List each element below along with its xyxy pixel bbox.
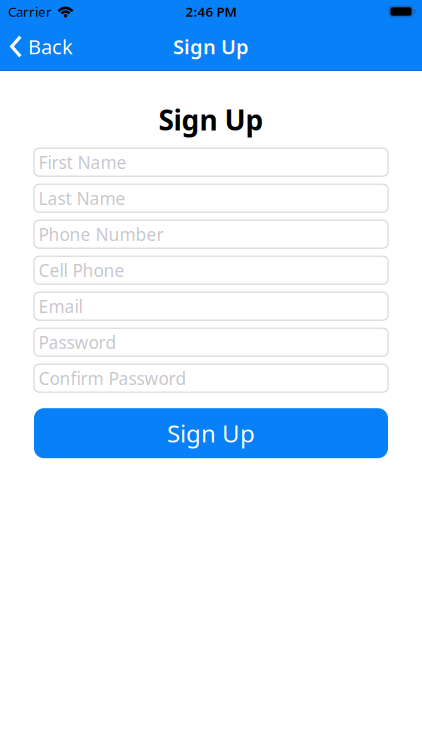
button[interactable]: Last Name [34,184,388,212]
button[interactable]: First Name [34,148,388,176]
button[interactable]: Back [0,33,73,60]
button[interactable]: Phone Number [34,220,388,248]
staticText: Email [38,295,82,318]
staticText: Sign Up [173,33,249,60]
button[interactable]: Password [34,328,388,356]
staticText: Sign Up [167,417,255,449]
staticText: Confirm Password [38,367,186,390]
button[interactable]: Email [34,292,388,320]
button[interactable]: Cell Phone [34,256,388,284]
staticText: Cell Phone [38,259,124,282]
staticText: Sign Up [158,101,263,138]
button[interactable]: Confirm Password [34,364,388,392]
staticText: Password [38,331,116,354]
staticText: Phone Number [38,223,163,246]
staticText: Carrier [8,3,52,20]
staticText: Back [28,33,73,60]
staticText: Last Name [38,187,125,210]
staticText: First Name [38,151,126,174]
button[interactable]: Sign Up [34,408,388,458]
staticText: 2:46 PM [185,3,236,20]
